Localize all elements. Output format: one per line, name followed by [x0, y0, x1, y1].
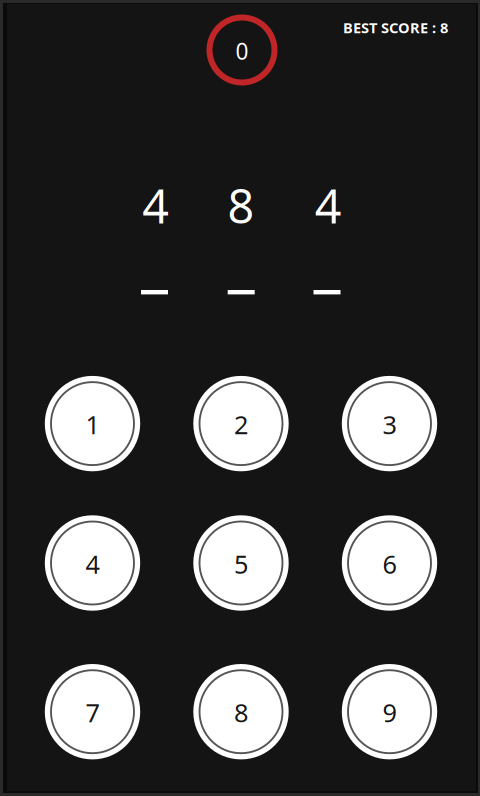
staticText: 9 [382, 696, 396, 729]
button[interactable]: 1 [45, 376, 140, 471]
staticText: 8 [234, 696, 248, 729]
staticText: 4 [315, 174, 342, 236]
staticText: 2 [234, 408, 248, 441]
staticText: 0 [235, 36, 248, 66]
staticText: 3 [382, 408, 396, 441]
staticText: 4 [85, 547, 99, 581]
button[interactable]: 5 [193, 515, 289, 611]
staticText: 8 [227, 174, 254, 236]
staticText: BEST SCORE : 8 [343, 18, 448, 37]
button[interactable]: 3 [342, 376, 437, 471]
button[interactable]: 2 [193, 376, 289, 471]
button[interactable]: 8 [193, 664, 289, 759]
button[interactable]: 6 [342, 515, 437, 611]
staticText: 7 [85, 696, 99, 729]
button[interactable]: 9 [342, 664, 437, 759]
staticText: 4 [142, 174, 169, 236]
staticText: 5 [234, 547, 248, 581]
staticText: 6 [382, 547, 396, 581]
button[interactable]: 4 [45, 515, 140, 611]
button[interactable]: 7 [45, 664, 140, 759]
staticText: 1 [85, 408, 99, 441]
